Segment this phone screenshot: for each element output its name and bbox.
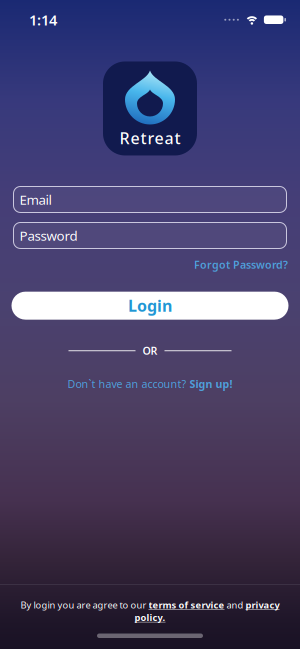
staticText: By login you are agree to our terms of s… bbox=[20, 599, 279, 611]
staticText: OR bbox=[142, 344, 157, 358]
staticText: Email bbox=[19, 191, 51, 208]
staticText: Don`t have an account? Sign up! bbox=[67, 377, 232, 391]
staticText: policy. bbox=[134, 611, 165, 623]
staticText: 1:14 bbox=[29, 10, 57, 29]
button[interactable]: Login bbox=[11, 292, 288, 320]
button[interactable]: By login you are agree to our terms of s… bbox=[20, 599, 279, 623]
button[interactable]: Forgot Password? bbox=[194, 257, 288, 272]
staticText: Retreat bbox=[119, 127, 180, 149]
button[interactable]: Don`t have an account? Sign up! bbox=[67, 377, 232, 391]
staticText: Forgot Password? bbox=[194, 257, 288, 272]
staticText: Password bbox=[19, 227, 77, 244]
staticText: Login bbox=[128, 295, 172, 316]
